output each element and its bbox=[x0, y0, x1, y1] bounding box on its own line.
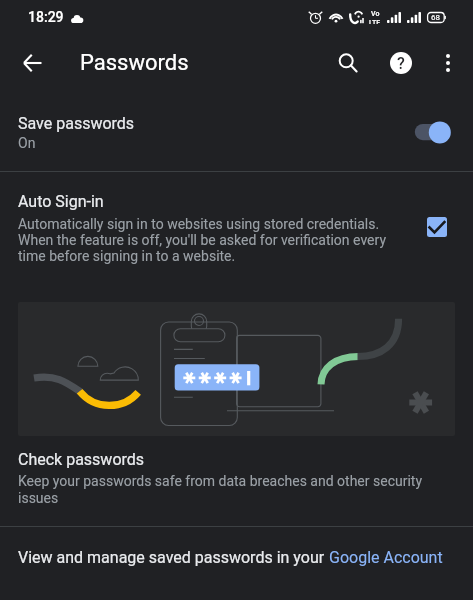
staticText: ? bbox=[397, 54, 405, 73]
button[interactable]: Help and feedback bbox=[377, 36, 425, 90]
staticText: LTE bbox=[369, 19, 381, 24]
staticText: Auto Sign-in bbox=[18, 192, 104, 211]
staticText: Keep your passwords safe from data breac… bbox=[18, 473, 430, 507]
button[interactable]: More options bbox=[426, 36, 470, 90]
staticText: On bbox=[18, 135, 36, 151]
staticText: Passwords bbox=[80, 50, 189, 76]
button[interactable]: Auto Sign-in bbox=[0, 172, 473, 288]
button[interactable]: Google Account bbox=[329, 548, 443, 567]
staticText: Automatically sign in to websites using … bbox=[18, 216, 410, 264]
button[interactable]: Save passwords bbox=[0, 90, 473, 171]
staticText: 68 bbox=[431, 13, 440, 22]
button[interactable]: Search bbox=[324, 36, 372, 90]
button[interactable]: Check passwords bbox=[0, 288, 473, 526]
staticText: Vo bbox=[371, 10, 380, 18]
button[interactable]: Navigate up bbox=[10, 36, 54, 90]
staticText: Check passwords bbox=[18, 450, 145, 469]
staticText: View and manage saved passwords in your bbox=[18, 548, 329, 567]
staticText: Save passwords bbox=[18, 114, 135, 133]
staticText: 18:29 bbox=[28, 9, 64, 25]
staticText: Google Account bbox=[329, 548, 443, 567]
